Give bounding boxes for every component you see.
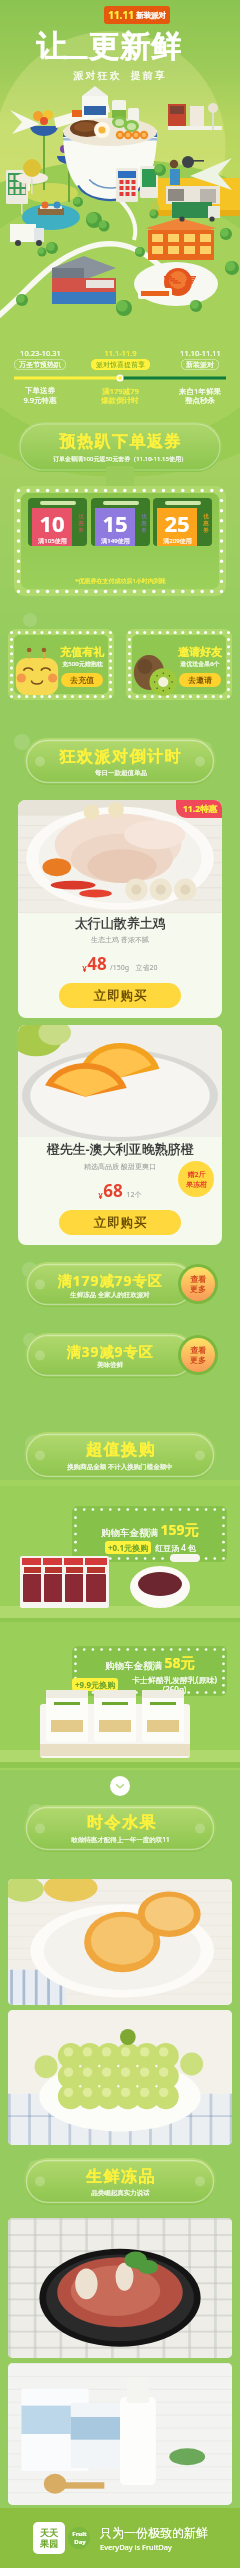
staticText: +0.1元换购	[108, 1542, 148, 1553]
button[interactable]: 预热趴下单返券	[18, 422, 222, 472]
staticText: 10.23-10.31	[20, 348, 61, 358]
staticText: 红豆汤 4 包	[155, 1542, 196, 1553]
button[interactable]: 时令水果	[24, 1805, 216, 1852]
button[interactable]: 15	[91, 498, 150, 546]
button[interactable]: 超值换购	[24, 1432, 216, 1479]
staticText: 派对惊喜提前享	[96, 360, 145, 369]
staticText: 太行山散养土鸡	[18, 915, 222, 931]
staticText: 整点秒杀	[185, 396, 215, 405]
staticText: 券	[203, 527, 209, 534]
staticText: 更多	[190, 1284, 206, 1294]
button[interactable]: 10	[28, 498, 87, 546]
button[interactable]: 25	[153, 498, 212, 546]
staticText: 生鲜冻品 全家人的狂欢派对	[70, 1290, 150, 1299]
staticText: Fruit	[72, 2530, 87, 2538]
staticText: 满179减79专区	[57, 1271, 163, 1290]
staticText: 每日一款超值单品	[95, 769, 147, 777]
button[interactable]: 充值有礼	[8, 629, 114, 700]
staticText: 券	[78, 527, 84, 534]
staticText: /150g	[110, 963, 129, 973]
staticText: 狂欢派对倒计时	[59, 747, 182, 767]
staticText: 品类崛起真实力说话	[91, 2189, 150, 2197]
staticText: 优	[141, 513, 147, 520]
staticText: 爆款倒计时	[101, 396, 139, 405]
staticText: 天天	[40, 2527, 58, 2538]
staticText: +9.9元换购	[75, 1679, 115, 1690]
staticText: 预热趴下单返券	[59, 432, 182, 452]
staticText: 购物车金额满	[101, 1527, 158, 1539]
staticText: 11.11	[108, 8, 134, 22]
button[interactable]: 立即购买	[59, 1210, 181, 1235]
staticText: 换购商品金额 不计入换购门槛金额中	[67, 1462, 173, 1471]
button[interactable]: 新装派对	[186, 360, 214, 369]
button[interactable]: 派对惊喜提前享	[96, 360, 145, 369]
staticText: 卡士鲜酪乳发酵乳(原味) (360g)	[122, 1674, 227, 1695]
staticText: 万圣节预热趴	[19, 360, 61, 369]
button[interactable]: 满179减79专区	[25, 1262, 195, 1307]
staticText: 11.2特惠	[183, 803, 217, 815]
staticText: 美味尝鲜	[97, 1361, 123, 1369]
button[interactable]: 查看	[181, 1338, 215, 1372]
staticText: 生鲜冻品	[85, 2167, 155, 2187]
staticText: 新装派对	[186, 360, 214, 369]
staticText: 优	[203, 513, 209, 520]
staticText: EveryDay is FruitDay	[100, 2542, 172, 2552]
button[interactable]: 满39减9专区	[25, 1333, 195, 1378]
staticText: 查看	[190, 1345, 206, 1355]
staticText: 查看	[190, 1274, 206, 1284]
staticText: 惠	[203, 520, 209, 527]
button[interactable]	[8, 2010, 232, 2145]
staticText: 只为一份极致的新鲜	[100, 2525, 208, 2540]
button[interactable]: 去邀请	[179, 673, 221, 687]
staticText: 立即购买	[93, 1215, 147, 1231]
staticText: 购物车金额满	[105, 1660, 162, 1672]
staticText: 优	[78, 513, 84, 520]
button[interactable]: 购物车金额满	[72, 1646, 227, 1696]
staticText: 让	[36, 28, 66, 66]
button[interactable]: 万圣节预热趴	[19, 360, 61, 369]
button[interactable]: 立即购买	[59, 983, 181, 1008]
staticText: 48	[87, 952, 107, 975]
staticText: 来自1年鲜果	[179, 386, 221, 396]
staticText: 满179减79	[102, 386, 139, 396]
button[interactable]: 11.2特惠	[18, 800, 222, 1018]
staticText: 邀优送金果6个	[180, 660, 220, 668]
staticText: 去充值	[70, 675, 94, 685]
button[interactable]	[8, 2218, 232, 2358]
staticText: 满149使用	[101, 537, 130, 545]
staticText: *优惠券在支付成功后1小时内到账	[75, 577, 166, 585]
staticText: 满105使用	[38, 537, 67, 545]
staticText: 充500元赠抱枕	[62, 660, 103, 668]
button[interactable]	[8, 1879, 232, 2005]
staticText: ¥	[82, 963, 87, 974]
button[interactable]: 狂欢派对倒计时	[24, 738, 216, 785]
button[interactable]: 橙先生-澳大利亚晚熟脐橙	[18, 1025, 222, 1245]
staticText: 邀请好友	[178, 645, 222, 659]
staticText: 超值换购	[85, 1440, 155, 1460]
staticText: 派对狂欢 提前享	[0, 68, 240, 82]
staticText: 68	[103, 1179, 123, 1202]
staticText: 生态土鸡 香浓不腻	[18, 935, 222, 945]
staticText: 赠2斤	[187, 1170, 206, 1180]
staticText: 惠	[78, 520, 84, 527]
staticText: 橙先生-澳大利亚晚熟脐橙	[18, 1140, 222, 1158]
staticText: 11.1-11.9	[104, 348, 137, 358]
staticText: 25	[164, 508, 190, 536]
staticText: 立省20	[135, 963, 158, 973]
button[interactable]: 赠2斤	[178, 1161, 214, 1197]
button[interactable]: 购物车金额满	[72, 1506, 227, 1562]
staticText: 更多	[190, 1355, 206, 1365]
button[interactable]: Scroll down	[110, 1776, 130, 1796]
staticText: 去邀请	[188, 675, 212, 685]
staticText: 159元	[160, 1520, 199, 1539]
staticText: 下单送券	[25, 386, 55, 395]
button[interactable]: 去充值	[61, 673, 103, 687]
button[interactable]: 邀请好友	[126, 629, 232, 700]
staticText: 满39减9专区	[66, 1342, 154, 1361]
staticText: Day	[74, 2538, 86, 2546]
button[interactable]	[8, 2363, 232, 2505]
button[interactable]: 11.11	[108, 8, 166, 22]
staticText: 11.10-11.11	[180, 348, 221, 358]
button[interactable]: 查看	[181, 1267, 215, 1301]
button[interactable]: 生鲜冻品	[24, 2158, 216, 2205]
